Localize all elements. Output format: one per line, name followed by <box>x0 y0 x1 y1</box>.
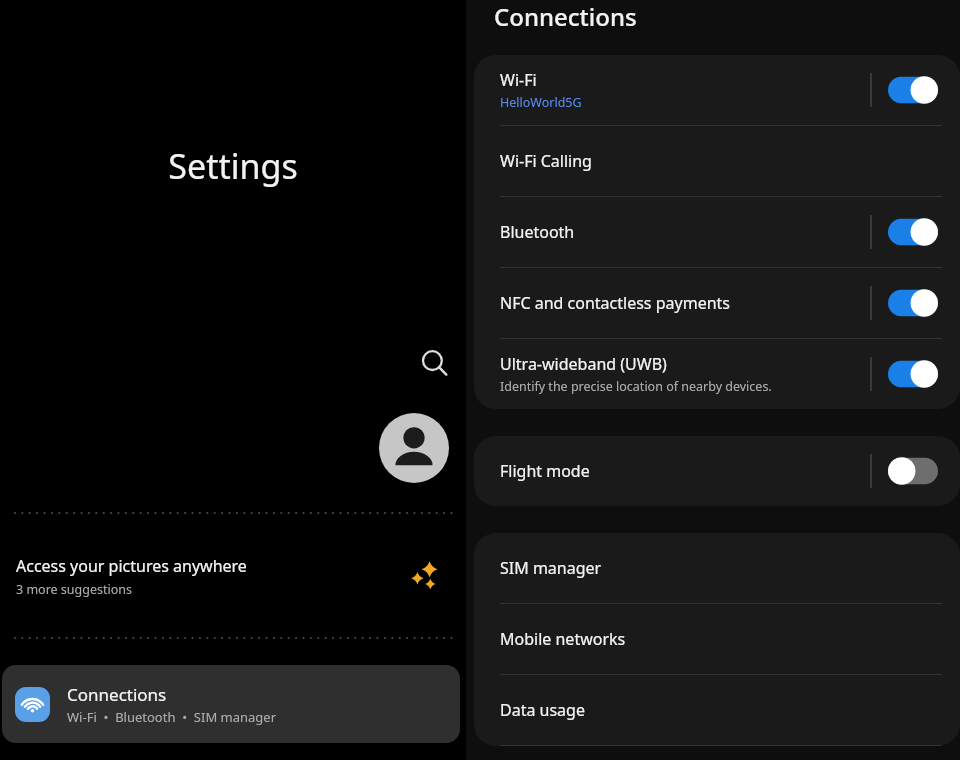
button[interactable]: Data usage <box>474 675 960 745</box>
staticText: SIM manager <box>500 557 602 579</box>
staticText: Access your pictures anywhere <box>16 555 247 577</box>
staticText: Wi-Fi • Bluetooth • SIM manager <box>67 708 277 726</box>
button[interactable]: Ultra-wideband (UWB) <box>474 339 960 409</box>
staticText: Data usage <box>500 699 585 721</box>
button[interactable]: Wi-Fi <box>474 55 960 125</box>
staticText: Bluetooth <box>500 221 575 243</box>
button[interactable]: Flight mode <box>474 436 960 506</box>
button[interactable]: Connections <box>2 665 460 743</box>
staticText: Wi-Fi Calling <box>500 150 592 172</box>
button[interactable]: Search <box>414 343 454 383</box>
button[interactable]: Bluetooth <box>474 197 960 267</box>
button[interactable]: Mobile networks <box>474 604 960 674</box>
button[interactable]: Wi-Fi Calling <box>474 126 960 196</box>
button[interactable]: Account <box>379 413 449 483</box>
staticText: Identify the precise location of nearby … <box>500 378 772 395</box>
button[interactable]: Flight mode toggle <box>888 456 938 486</box>
staticText: NFC and contactless payments <box>500 292 730 314</box>
staticText: Mobile networks <box>500 628 626 650</box>
button[interactable]: NFC and contactless payments toggle <box>888 288 938 318</box>
button[interactable]: Bluetooth toggle <box>888 217 938 247</box>
button[interactable]: NFC and contactless payments <box>474 268 960 338</box>
button[interactable]: Access your pictures anywhere <box>0 541 466 611</box>
staticText: HelloWorld5G <box>500 94 582 111</box>
staticText: Ultra-wideband (UWB) <box>500 353 667 375</box>
staticText: Connections <box>67 683 167 706</box>
button[interactable]: Ultra-wideband (UWB) toggle <box>888 359 938 389</box>
button[interactable]: Wi-Fi toggle <box>888 75 938 105</box>
button[interactable]: SIM manager <box>474 533 960 603</box>
staticText: Flight mode <box>500 460 590 482</box>
staticText: Connections <box>494 0 637 33</box>
staticText: Settings <box>0 143 466 189</box>
staticText: 3 more suggestions <box>16 581 133 598</box>
staticText: Wi-Fi <box>500 69 537 91</box>
